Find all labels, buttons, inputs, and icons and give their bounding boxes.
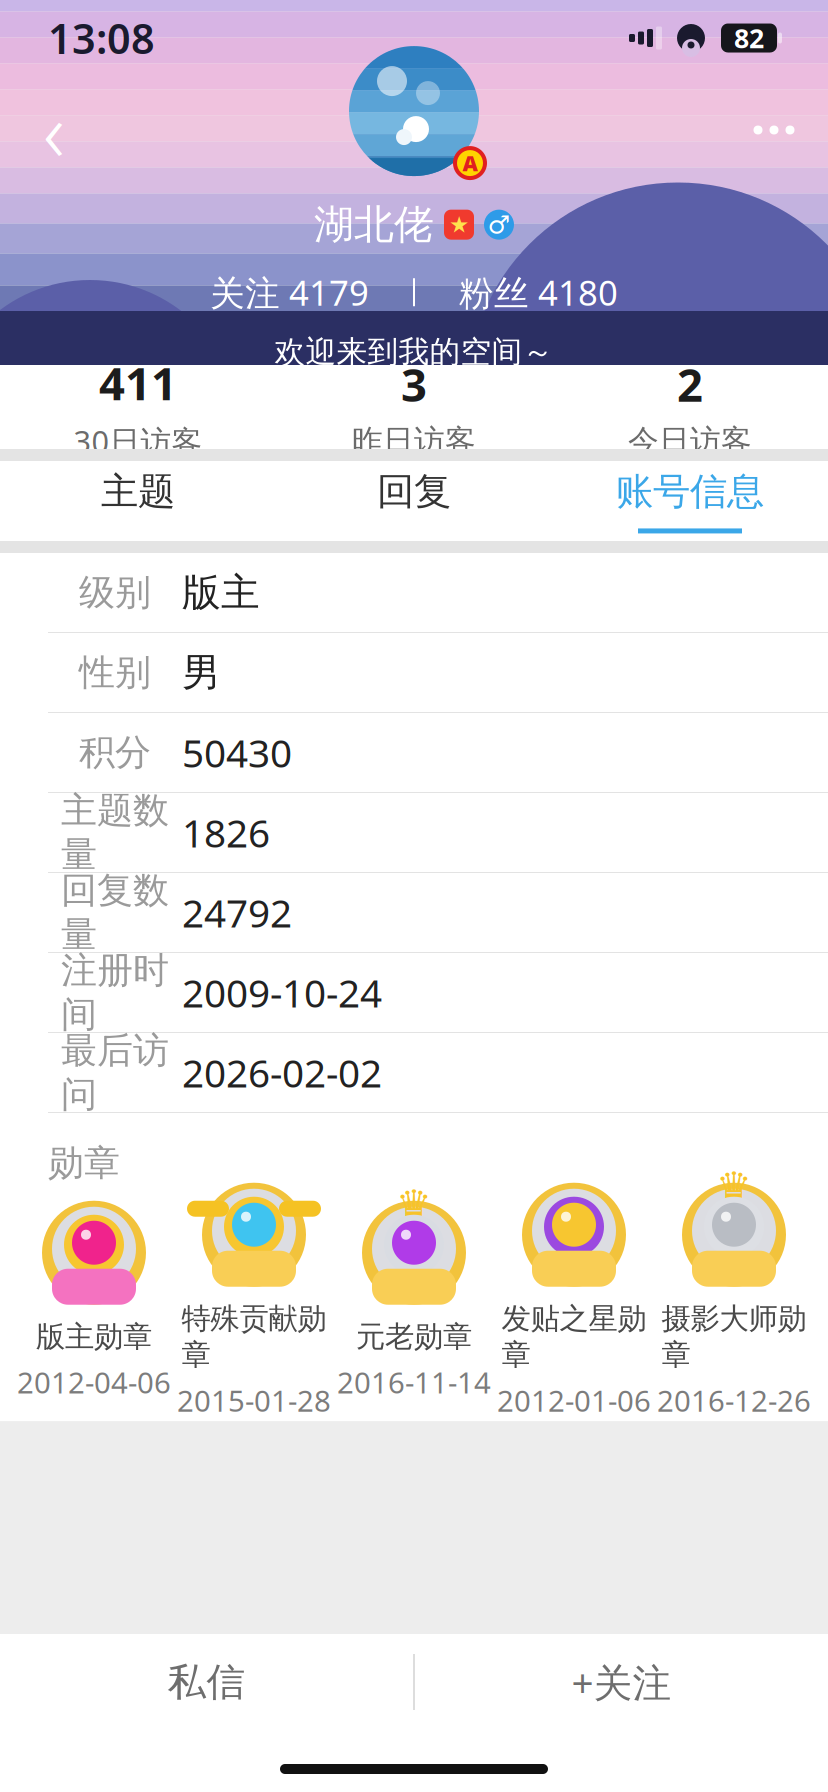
staticText: 2016-12-26 <box>657 1381 811 1420</box>
staticText: 元老勋章 <box>356 1319 472 1355</box>
staticText: ♂ <box>487 210 510 239</box>
staticText: 摄影大师勋章 <box>661 1301 806 1373</box>
staticText: 版主 <box>182 569 260 616</box>
button[interactable]: More options <box>736 92 812 168</box>
staticText: 昨日访客 <box>352 422 476 460</box>
staticText: 30日访客 <box>73 421 202 461</box>
staticText: 主题数量 <box>61 788 169 877</box>
staticText: 勋章 <box>48 1141 120 1185</box>
staticText: 24792 <box>182 887 292 938</box>
button[interactable]: 私信 <box>0 1634 413 1730</box>
staticText: 版主勋章 <box>36 1319 152 1355</box>
staticText: ♛ <box>396 1182 432 1227</box>
button[interactable]: 3 <box>276 368 552 446</box>
staticText: 回复 <box>377 469 451 514</box>
button[interactable]: Back <box>16 92 92 168</box>
staticText: 主题 <box>101 469 175 514</box>
staticText: 账号信息 <box>616 469 764 514</box>
button[interactable]: 粉丝 4180 <box>445 263 632 321</box>
button[interactable]: 回复 <box>276 461 552 541</box>
button[interactable]: 2 <box>552 368 828 446</box>
button[interactable]: 发贴之星勋章 <box>494 1201 654 1397</box>
staticText: 50430 <box>182 727 292 778</box>
staticText: 82 <box>734 20 764 56</box>
staticText: 积分 <box>79 730 151 775</box>
staticText: 411 <box>99 352 177 413</box>
staticText: 1826 <box>182 807 270 858</box>
button[interactable]: 特殊贡献勋章 <box>174 1201 334 1397</box>
staticText: 2026-02-02 <box>182 1047 382 1098</box>
button[interactable]: ♛ <box>334 1201 494 1397</box>
button[interactable]: 411 <box>0 368 276 446</box>
staticText: 湖北佬 <box>314 200 434 249</box>
staticText: 级别 <box>79 570 151 615</box>
staticText: ♛ <box>716 1164 752 1209</box>
staticText: 关注 4179 <box>210 269 369 315</box>
button[interactable]: 账号信息 <box>552 461 828 541</box>
button[interactable]: 版主勋章 <box>14 1201 174 1397</box>
staticText: A <box>462 149 477 177</box>
staticText: 特殊贡献勋章 <box>181 1301 326 1373</box>
staticText: 3 <box>401 354 427 414</box>
staticText: 私信 <box>167 1658 245 1706</box>
staticText: ★ <box>449 212 469 237</box>
staticText: 13:08 <box>48 11 155 65</box>
staticText: +关注 <box>571 1656 671 1708</box>
staticText: 今日访客 <box>628 422 752 460</box>
staticText: 发贴之星勋章 <box>501 1301 646 1373</box>
button[interactable]: 主题 <box>0 461 276 541</box>
staticText: 最后访问 <box>61 1028 169 1117</box>
button[interactable]: +关注 <box>415 1634 828 1730</box>
staticText: 粉丝 4180 <box>459 269 618 315</box>
staticText: 欢迎来到我的空间～ <box>274 333 553 371</box>
staticText: 回复数量 <box>61 868 169 957</box>
staticText: 2016-11-14 <box>337 1363 491 1402</box>
staticText: 2012-01-06 <box>497 1381 651 1420</box>
button[interactable]: ♛ <box>654 1201 814 1397</box>
staticText: 男 <box>182 649 221 696</box>
button[interactable]: 关注 4179 <box>196 263 383 321</box>
staticText: 注册时间 <box>61 948 169 1037</box>
staticText: 2012-04-06 <box>17 1363 171 1402</box>
staticText: 2015-01-28 <box>177 1381 331 1420</box>
staticText: 性别 <box>79 650 151 695</box>
staticText: 2009-10-24 <box>182 967 382 1018</box>
staticText: 2 <box>677 354 703 414</box>
staticText: ‹ <box>43 75 65 185</box>
